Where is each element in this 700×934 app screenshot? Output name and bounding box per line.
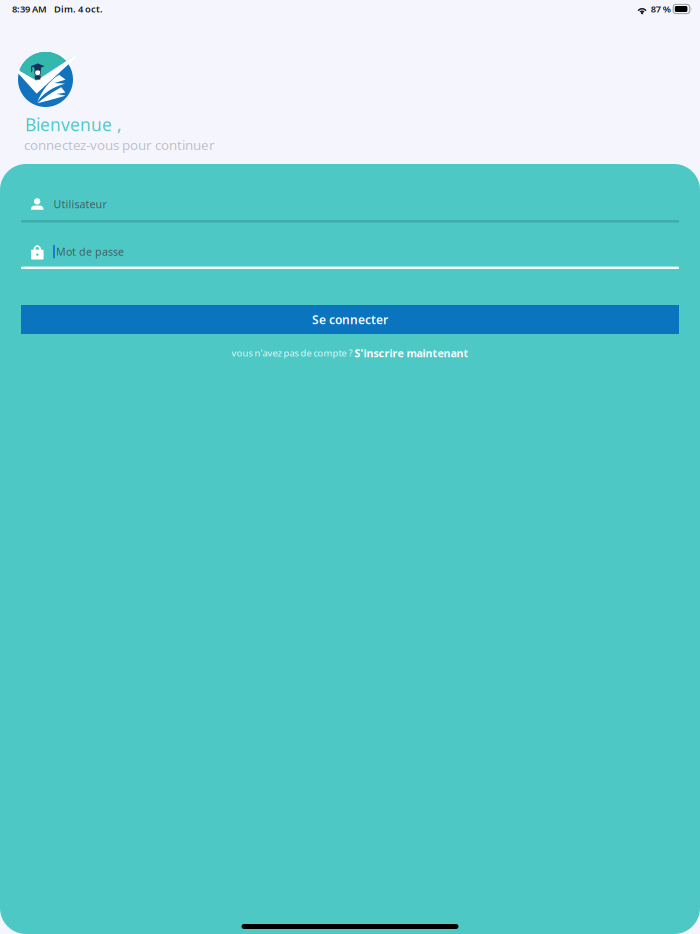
staticText: Dim. 4 oct. — [54, 3, 103, 15]
staticText: S'inscrire maintenant — [354, 346, 468, 360]
button[interactable]: vous n'avez pas de compte ? — [0, 344, 700, 362]
button[interactable]: Utilisateur — [0, 188, 700, 223]
staticText: Bienvenue , — [25, 113, 122, 136]
staticText: connectez-vous pour continuer — [24, 136, 215, 154]
staticText: 8:39 AM — [12, 3, 47, 15]
staticText: Se connecter — [312, 311, 388, 327]
button[interactable]: Se connecter — [21, 305, 679, 334]
button[interactable]: Mot de passe — [0, 238, 700, 269]
staticText: Utilisateur — [53, 197, 106, 211]
staticText: Mot de passe — [56, 244, 124, 259]
staticText: vous n'avez pas de compte ? — [231, 347, 354, 359]
staticText: 87 % — [651, 3, 671, 15]
